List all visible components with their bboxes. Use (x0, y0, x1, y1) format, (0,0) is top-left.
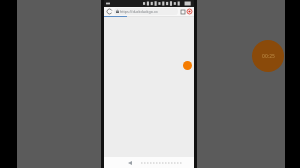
button[interactable]: Floating bubble (183, 61, 192, 70)
button[interactable]: Tabs (179, 8, 186, 15)
staticText: https://duckduckgo.co (120, 9, 158, 14)
staticText: 00:25 (262, 53, 275, 60)
button[interactable]: https://duckduckgo.co (114, 8, 178, 15)
button[interactable]: Recording bubble (252, 40, 284, 72)
button[interactable]: Recording indicator (186, 8, 193, 15)
button[interactable]: Back (126, 159, 133, 166)
button[interactable]: Reload (106, 8, 113, 15)
